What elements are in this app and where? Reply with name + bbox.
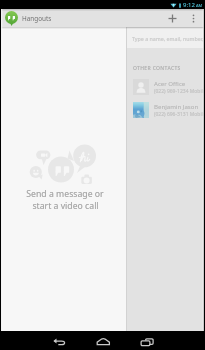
button[interactable]: More options xyxy=(184,9,202,27)
staticText: Type a name, email, number, or circ xyxy=(132,35,205,42)
button[interactable]: New conversation xyxy=(163,9,181,27)
button[interactable]: Type a name, email, number, or circ xyxy=(126,28,205,48)
button[interactable]: Home xyxy=(126,331,152,350)
staticText: Hangouts xyxy=(22,14,52,23)
staticText: AM xyxy=(196,3,203,8)
staticText: (022) 696-3131 Mobile xyxy=(154,111,205,118)
staticText: Send a message or xyxy=(26,188,104,200)
staticText: Acer Office xyxy=(154,79,186,87)
button[interactable]: Benjamin Jason xyxy=(126,98,205,121)
staticText: (022) 969-1234 Mobile xyxy=(154,88,205,95)
staticText: 9:12 xyxy=(183,1,195,9)
button[interactable]: Acer Office xyxy=(126,75,205,98)
staticText: OTHER CONTACTS xyxy=(133,65,181,72)
button[interactable]: Back xyxy=(81,331,107,350)
staticText: start a video call xyxy=(32,200,99,212)
staticText: Benjamin Jason xyxy=(154,102,199,110)
